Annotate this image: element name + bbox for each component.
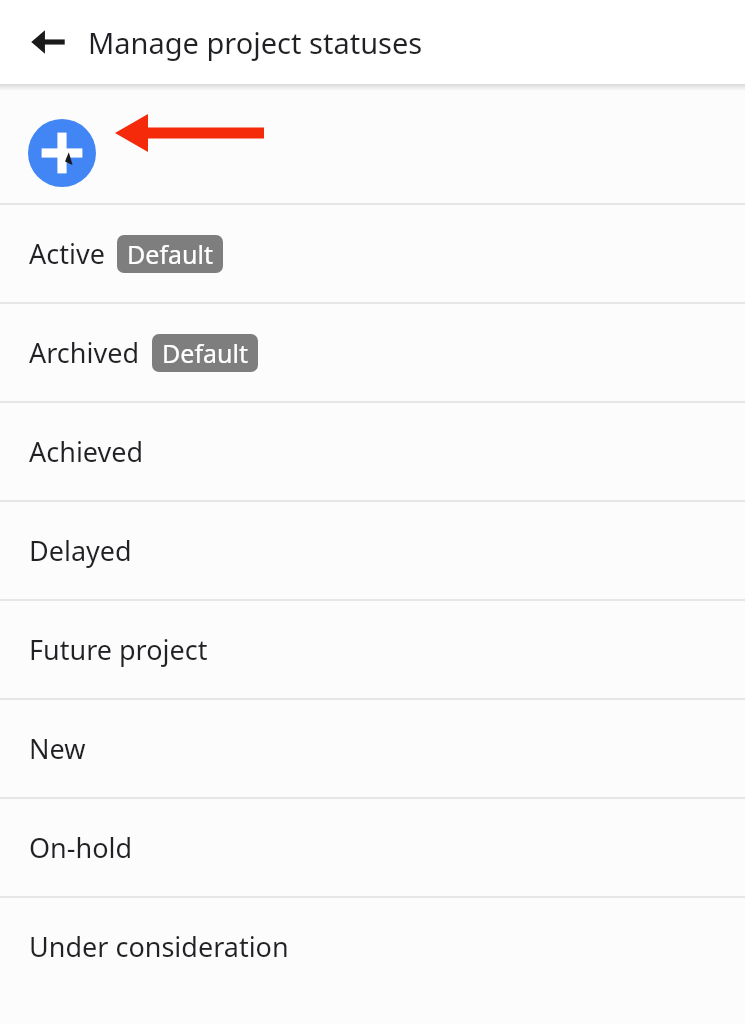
staticText: Delayed bbox=[29, 532, 132, 569]
button[interactable]: New bbox=[0, 700, 745, 797]
button[interactable]: Achieved bbox=[0, 403, 745, 500]
staticText: Default bbox=[162, 336, 248, 370]
staticText: Future project bbox=[29, 631, 208, 668]
staticText: Manage project statuses bbox=[88, 23, 423, 62]
button[interactable]: Active bbox=[0, 205, 745, 302]
button[interactable]: Future project bbox=[0, 601, 745, 698]
button[interactable]: Archived bbox=[0, 304, 745, 401]
staticText: On-hold bbox=[29, 829, 133, 866]
staticText: Default bbox=[127, 237, 213, 271]
button[interactable]: Add status bbox=[28, 119, 96, 187]
button[interactable]: Delayed bbox=[0, 502, 745, 599]
button[interactable]: Under consideration bbox=[0, 898, 745, 995]
button[interactable]: Back bbox=[22, 16, 74, 68]
staticText: Active bbox=[29, 235, 105, 272]
staticText: Under consideration bbox=[29, 928, 289, 965]
staticText: Archived bbox=[29, 334, 140, 371]
staticText: New bbox=[29, 730, 86, 767]
button[interactable]: On-hold bbox=[0, 799, 745, 896]
staticText: Achieved bbox=[29, 433, 144, 470]
